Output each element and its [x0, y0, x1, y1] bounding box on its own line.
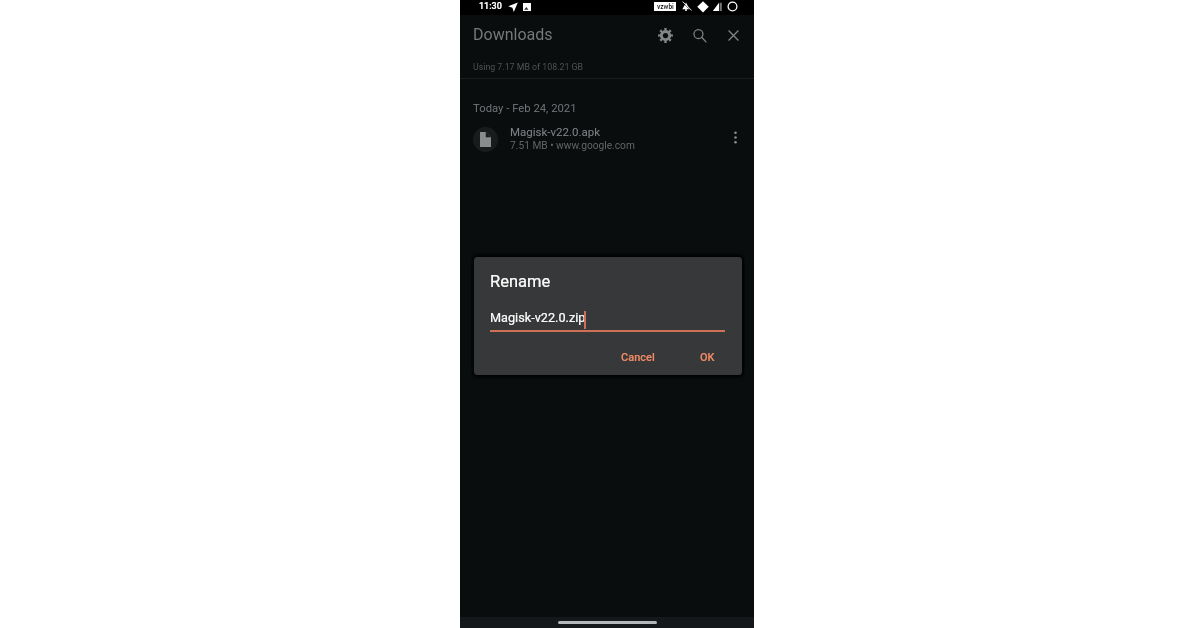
- staticText: vzwbi: [657, 3, 674, 11]
- button[interactable]: OK: [692, 346, 723, 369]
- staticText: 11:30: [479, 1, 502, 12]
- staticText: OK: [700, 351, 715, 364]
- staticText: Downloads: [473, 25, 553, 44]
- staticText: Using 7.17 MB of 108.21 GB: [473, 62, 583, 72]
- button[interactable]: Magisk-v22.0.apk: [460, 123, 754, 157]
- button[interactable]: Settings: [653, 23, 677, 47]
- staticText: Magisk-v22.0.apk: [510, 125, 601, 138]
- staticText: 7.51 MB • www.google.com: [510, 140, 635, 152]
- button[interactable]: More options: [723, 125, 747, 149]
- button[interactable]: Close: [721, 23, 745, 47]
- staticText: Rename: [490, 272, 551, 291]
- staticText: Today - Feb 24, 2021: [473, 102, 577, 115]
- staticText: Cancel: [621, 351, 655, 364]
- button[interactable]: Cancel: [613, 346, 663, 369]
- button[interactable]: Search: [687, 23, 711, 47]
- staticText: Magisk-v22.0.zip: [490, 310, 586, 325]
